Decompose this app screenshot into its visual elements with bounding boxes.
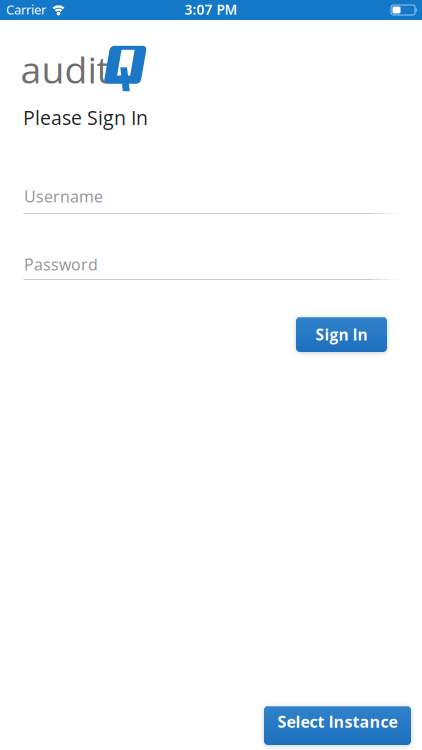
staticText: Please Sign In: [23, 104, 148, 131]
staticText: Select Instance: [277, 711, 397, 732]
staticText: 3:07 PM: [184, 0, 237, 19]
staticText: audit: [20, 43, 109, 94]
button[interactable]: Select Instance: [264, 706, 411, 745]
staticText: Username: [24, 185, 103, 207]
staticText: Password: [24, 253, 98, 275]
button[interactable]: Sign In: [296, 317, 387, 352]
button[interactable]: Password: [23, 252, 399, 280]
staticText: Carrier: [6, 1, 46, 18]
button[interactable]: Username: [23, 186, 399, 214]
staticText: Sign In: [315, 324, 367, 345]
